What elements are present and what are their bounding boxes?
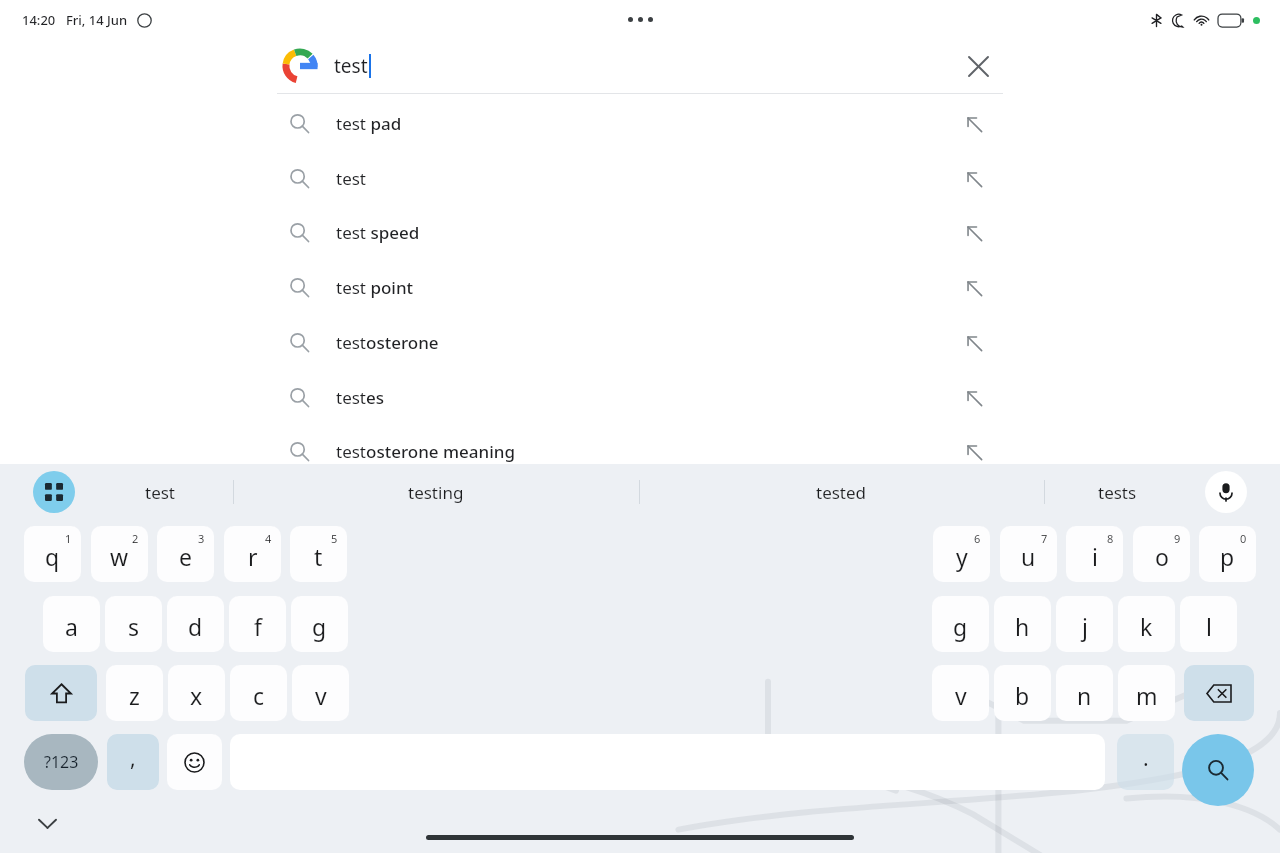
button[interactable]: a — [43, 596, 100, 652]
staticText: test speed — [336, 221, 420, 244]
staticText: s — [128, 611, 140, 642]
button[interactable]: q — [24, 526, 81, 582]
button[interactable]: test — [277, 151, 1003, 206]
staticText: x — [190, 680, 203, 711]
staticText: k — [1140, 611, 1153, 642]
staticText: y — [956, 541, 968, 572]
button[interactable]: tests — [1027, 464, 1207, 520]
button[interactable]: Clear search — [956, 44, 1000, 88]
button[interactable]: y — [933, 526, 990, 582]
staticText: r — [248, 541, 258, 572]
button[interactable]: z — [106, 665, 163, 721]
staticText: 3 — [198, 531, 205, 546]
button[interactable]: Hide keyboard — [26, 802, 68, 844]
staticText: testosterone meaning — [336, 440, 516, 463]
button[interactable]: Emoji — [167, 734, 222, 790]
button[interactable]: o — [1133, 526, 1190, 582]
button[interactable]: ?123 — [24, 734, 98, 790]
button[interactable]: testosterone — [277, 315, 1003, 370]
button[interactable]: Insert suggestion — [955, 433, 993, 471]
button[interactable]: i — [1066, 526, 1123, 582]
button[interactable]: d — [167, 596, 224, 652]
staticText: 0 — [1240, 531, 1247, 546]
button[interactable]: u — [1000, 526, 1057, 582]
button[interactable]: n — [1056, 665, 1113, 721]
button[interactable]: e — [157, 526, 214, 582]
button[interactable]: tested — [751, 464, 931, 520]
button[interactable]: m — [1118, 665, 1175, 721]
button[interactable]: Insert suggestion — [955, 269, 993, 307]
button[interactable]: testes — [277, 370, 1003, 425]
button[interactable]: Insert suggestion — [955, 324, 993, 362]
staticText: Fri, 14 Jun — [66, 11, 128, 29]
button[interactable]: g — [291, 596, 348, 652]
staticText: i — [1092, 541, 1098, 572]
staticText: testosterone — [336, 331, 439, 354]
staticText: 8 — [1107, 531, 1114, 546]
button[interactable]: Search — [1182, 734, 1254, 806]
staticText: z — [129, 680, 140, 711]
staticText: b — [1015, 680, 1030, 711]
button[interactable]: Insert suggestion — [955, 160, 993, 198]
staticText: o — [1155, 541, 1169, 572]
button[interactable]: l — [1180, 596, 1237, 652]
button[interactable]: f — [229, 596, 286, 652]
button[interactable]: b — [994, 665, 1051, 721]
button[interactable]: p — [1199, 526, 1256, 582]
button[interactable]: testing — [346, 464, 526, 520]
staticText: q — [45, 541, 60, 572]
button[interactable]: s — [105, 596, 162, 652]
button[interactable]: Backspace — [1184, 665, 1254, 721]
button[interactable]: test pad — [277, 96, 1003, 151]
staticText: c — [253, 680, 265, 711]
staticText: . — [1143, 744, 1149, 773]
button[interactable]: Comma — [107, 734, 159, 790]
staticText: g — [312, 611, 327, 642]
button[interactable]: r — [224, 526, 281, 582]
staticText: 9 — [1174, 531, 1181, 546]
staticText: testes — [336, 386, 385, 409]
staticText: a — [65, 611, 78, 642]
staticText: l — [1206, 611, 1212, 642]
button[interactable]: Period — [1117, 734, 1174, 790]
staticText: test pad — [336, 112, 402, 135]
staticText: 5 — [331, 531, 338, 546]
button[interactable]: test speed — [277, 205, 1003, 260]
button[interactable]: c — [230, 665, 287, 721]
button[interactable]: Voice input — [1205, 471, 1247, 513]
button[interactable]: k — [1118, 596, 1175, 652]
staticText: v — [315, 680, 327, 711]
button[interactable]: Shift — [25, 665, 97, 721]
staticText: tested — [816, 481, 867, 504]
staticText: testing — [408, 481, 464, 504]
staticText: d — [188, 611, 203, 642]
button[interactable]: t — [290, 526, 347, 582]
button[interactable]: w — [91, 526, 148, 582]
staticText: t — [314, 541, 323, 572]
staticText: f — [254, 611, 262, 642]
button[interactable]: Insert suggestion — [955, 214, 993, 252]
button[interactable]: test — [70, 464, 250, 520]
button[interactable]: test point — [277, 260, 1003, 315]
staticText: 7 — [1041, 531, 1048, 546]
staticText: 6 — [974, 531, 981, 546]
button[interactable]: v — [292, 665, 349, 721]
staticText: w — [110, 541, 129, 572]
button[interactable]: testosterone meaning — [277, 424, 1003, 479]
staticText: p — [1220, 541, 1235, 572]
staticText: test — [336, 167, 367, 190]
button[interactable]: Insert suggestion — [955, 379, 993, 417]
button[interactable]: x — [168, 665, 225, 721]
staticText: 14:20 — [22, 11, 56, 29]
staticText: , — [130, 744, 136, 773]
button[interactable]: Insert suggestion — [955, 105, 993, 143]
staticText: h — [1015, 611, 1030, 642]
staticText: g — [953, 611, 968, 642]
staticText: test point — [336, 276, 414, 299]
button[interactable]: g — [932, 596, 989, 652]
button[interactable]: h — [994, 596, 1051, 652]
button[interactable]: j — [1056, 596, 1113, 652]
button[interactable]: v — [932, 665, 989, 721]
button[interactable]: Keyboard toolbar — [33, 471, 75, 513]
